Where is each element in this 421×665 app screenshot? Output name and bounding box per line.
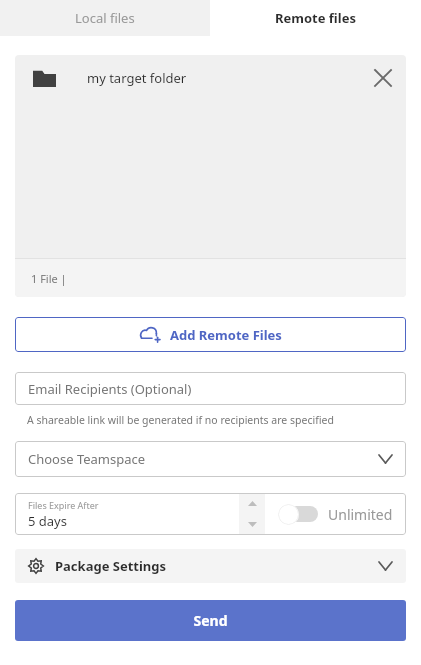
staticText: 1 File | [31,271,67,286]
staticText: Files Expire After [28,499,99,511]
button[interactable]: Package Settings [15,549,406,583]
staticText: Choose Teamspace [28,450,146,468]
button[interactable]: Email Recipients (Optional) [15,372,406,405]
staticText: Remote files [275,9,356,27]
button[interactable]: Increase expiry [239,495,265,512]
button[interactable]: Remote files [210,0,421,36]
button[interactable]: Send [15,600,406,641]
button[interactable]: Decrease expiry [239,516,265,533]
staticText: my target folder [87,69,187,87]
staticText: 5 days [28,512,67,530]
button[interactable]: Remove folder [363,58,403,98]
staticText: Email Recipients (Optional) [28,380,192,398]
button[interactable]: Choose Teamspace [15,441,406,477]
button[interactable]: my target folder [15,55,406,101]
staticText: Local files [75,9,135,27]
button[interactable]: Add Remote Files [15,317,406,352]
button[interactable]: Local files [0,0,210,36]
button[interactable]: Unlimited expiry toggle [278,503,320,525]
staticText: Package Settings [55,557,167,575]
staticText: A shareable link will be generated if no… [27,413,334,427]
staticText: Add Remote Files [170,326,282,344]
staticText: Unlimited [328,505,393,524]
staticText: Send [193,611,228,630]
